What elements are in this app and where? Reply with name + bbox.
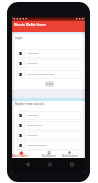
staticText: Password [27, 62, 38, 65]
staticText: Main Wallet Home [12, 154, 30, 157]
staticText: Email Address [27, 124, 43, 127]
staticText: Confirm Password [27, 144, 48, 147]
button[interactable]: PIN AUTHENTICATION CODE [17, 70, 81, 79]
button[interactable]: Password [17, 59, 81, 68]
button[interactable]: Dashboard [36, 150, 60, 158]
button[interactable]: Notifications [60, 150, 84, 158]
button[interactable]: Confirm Password [17, 141, 81, 150]
staticText: Register new account [15, 102, 44, 106]
staticText: Notifications [62, 154, 78, 157]
staticText: Username [27, 114, 39, 117]
button[interactable]: Bitcoin Wallet Home [12, 21, 85, 32]
staticText: Username [27, 52, 39, 55]
button[interactable]: Email Address [17, 121, 81, 130]
staticText: Bitcoin Wallet Home [14, 22, 46, 26]
button[interactable]: Log in [45, 81, 54, 87]
button[interactable]: Main Wallet Home [12, 150, 36, 158]
button[interactable]: Username [17, 49, 81, 58]
button[interactable]: Username [17, 111, 81, 120]
staticText: Log in [46, 82, 54, 86]
staticText: Login [15, 36, 23, 40]
staticText: PIN AUTHENTICATION CODE [27, 73, 55, 76]
staticText: Dashboard [42, 154, 56, 157]
button[interactable]: Password [17, 131, 81, 140]
staticText: Password [27, 134, 38, 137]
